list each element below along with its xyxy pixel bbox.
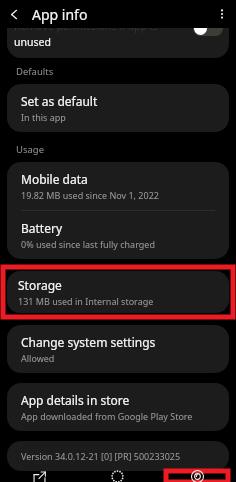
staticText: 131 MB used in Internal storage [18,295,154,307]
button[interactable]: Open [0,471,78,482]
staticText: Change system settings [21,334,156,350]
staticText: App details in store [21,392,130,408]
button[interactable]: Force stop [166,471,228,482]
staticText: unused [14,35,51,49]
staticText: 0% used since last fully charged [21,238,155,250]
button[interactable]: Toggle remove permissions [193,28,223,36]
button[interactable]: Remove permissions if app is [7,28,229,58]
button[interactable]: Change system settings [7,325,229,373]
button[interactable]: Set as default [7,84,229,132]
staticText: Allowed [21,352,55,364]
button[interactable]: Storage [7,271,229,313]
button[interactable]: More options [208,0,236,28]
staticText: App info [32,5,88,24]
button[interactable]: App details in store [7,383,229,431]
staticText: Set as default [21,93,98,109]
staticText: Usage [16,143,45,156]
staticText: Storage [18,277,62,293]
button[interactable]: Mobile data [7,162,229,210]
staticText: In this app [21,111,66,123]
staticText: Remove permissions if app is [14,28,158,33]
staticText: Defaults [16,65,54,78]
button[interactable]: Disable [78,471,157,482]
staticText: App downloaded from Google Play Store [21,410,193,422]
button[interactable]: Version 34.0.12-21 [0] [PR] 500233025 [7,441,229,471]
staticText: Mobile data [21,171,88,187]
staticText: Version 34.0.12-21 [0] [PR] 500233025 [21,450,181,462]
staticText: 19.82 MB used since Nov 1, 2022 [21,189,159,201]
button[interactable]: Back [0,0,28,28]
staticText: Battery [21,220,63,236]
button[interactable]: Battery [7,211,229,259]
